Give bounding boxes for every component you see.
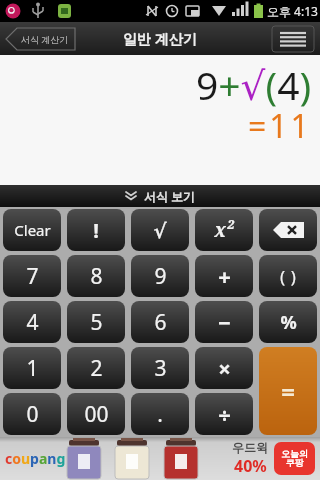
button[interactable]: 6 [131,301,189,343]
button[interactable]: x² [195,209,253,251]
button[interactable]: % [259,301,317,343]
button[interactable]: 2 [67,347,125,389]
button[interactable]: + [195,255,253,297]
button[interactable]: 3 [131,347,189,389]
staticText: × [218,353,231,383]
staticText: 서식 계산기 [21,33,69,45]
staticText: ! [93,217,99,244]
staticText: 0 [26,400,39,429]
button[interactable]: coupang [0,437,320,480]
staticText: 7 [26,262,39,291]
button[interactable]: . [131,393,189,435]
staticText: Clear [14,220,51,240]
staticText: 오늘의 쿠팡 [281,448,308,469]
staticText: − [218,307,231,337]
staticText: 우드윅 [232,440,268,455]
staticText: √ [153,219,167,242]
staticText: 서식 보기 [144,188,196,204]
staticText: 오후 4:13 [267,3,318,19]
staticText: . [157,400,163,429]
button[interactable]: 8 [67,255,125,297]
staticText: 3 [154,354,167,383]
staticText: 2 [90,354,103,383]
staticText: 6 [154,308,167,337]
button[interactable]: 5 [67,301,125,343]
staticText: % [280,310,297,335]
button[interactable]: ! [67,209,125,251]
button[interactable]: − [195,301,253,343]
staticText: = [281,375,295,408]
staticText: =11 [248,104,312,148]
button[interactable]: 0 [3,393,61,435]
staticText: 4 [26,308,39,337]
button[interactable]: 4 [3,301,61,343]
staticText: 8 [90,262,103,291]
button[interactable]: 7 [3,255,61,297]
button[interactable] [259,209,317,251]
staticText: 일반 계산기 [123,29,197,48]
button[interactable]: × [195,347,253,389]
button[interactable]: 1 [3,347,61,389]
button[interactable]: ( ) [259,255,317,297]
button[interactable]: Clear [3,209,61,251]
button[interactable]: ÷ [195,393,253,435]
button[interactable]: 00 [67,393,125,435]
staticText: 9+√(4) [196,58,312,111]
staticText: 00 [84,400,109,429]
staticText: 40% [234,455,267,477]
button[interactable]: √ [131,209,189,251]
staticText: 5 [90,308,103,337]
button[interactable] [272,26,314,52]
button[interactable]: 서식 보기 [0,185,320,207]
staticText: x² [214,217,234,243]
button[interactable]: = [259,347,317,435]
staticText: + [218,261,231,291]
staticText: coupang [5,449,66,468]
staticText: ÷ [218,399,231,429]
staticText: ( ) [280,265,296,288]
staticText: 1 [26,354,39,383]
button[interactable]: 9 [131,255,189,297]
button[interactable]: 서식 계산기 [5,27,79,51]
staticText: 9 [154,262,167,291]
